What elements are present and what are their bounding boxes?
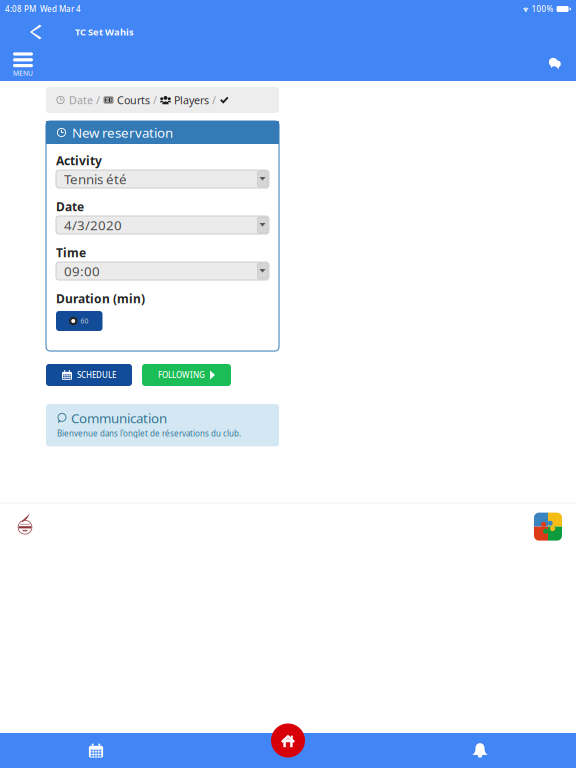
button[interactable]: Players bbox=[160, 91, 209, 109]
staticText: SCHEDULE bbox=[77, 370, 116, 380]
staticText: Time bbox=[56, 244, 86, 260]
staticText: TC Set Wahis bbox=[75, 26, 134, 38]
button[interactable]: Notifications bbox=[384, 733, 576, 768]
button[interactable]: 09:00 bbox=[56, 262, 269, 280]
staticText: FOLLOWING bbox=[158, 370, 205, 380]
staticText: / bbox=[150, 93, 160, 107]
staticText: / bbox=[93, 93, 103, 107]
staticText: Bienvenue dans l'onglet de réservations … bbox=[57, 428, 241, 439]
button[interactable]: SCHEDULE bbox=[46, 364, 132, 386]
button[interactable]: Menu bbox=[7, 44, 39, 82]
button[interactable]: Tennis été bbox=[56, 170, 269, 188]
staticText: 100% bbox=[530, 4, 554, 14]
button[interactable]: Home bbox=[192, 733, 384, 768]
staticText: Courts bbox=[117, 93, 150, 107]
button[interactable]: 60 bbox=[56, 311, 102, 331]
button[interactable]: FOLLOWING bbox=[142, 364, 231, 386]
staticText: Date bbox=[69, 93, 93, 107]
button[interactable]: Home bbox=[271, 723, 305, 757]
staticText: 09:00 bbox=[64, 262, 100, 280]
button[interactable]: Calendar bbox=[0, 733, 192, 768]
staticText: Tennis été bbox=[64, 170, 127, 188]
staticText: 60 bbox=[80, 317, 88, 325]
staticText: Wed Mar 4 bbox=[36, 4, 81, 14]
staticText: Duration (min) bbox=[56, 290, 145, 306]
staticText: Communication bbox=[71, 409, 167, 427]
staticText: Activity bbox=[56, 152, 102, 168]
staticText: New reservation bbox=[72, 124, 173, 141]
staticText: 4:08 PM bbox=[5, 4, 36, 14]
button[interactable]: 4/3/2020 bbox=[56, 216, 269, 234]
staticText: 4/3/2020 bbox=[64, 216, 122, 234]
staticText: MENU bbox=[13, 69, 33, 78]
button[interactable]: Back bbox=[23, 18, 47, 46]
staticText: Date bbox=[56, 198, 84, 214]
staticText: / bbox=[209, 93, 219, 107]
button[interactable]: Date bbox=[55, 91, 93, 109]
staticText: Players bbox=[174, 93, 209, 107]
button[interactable]: Messages bbox=[543, 46, 567, 81]
button[interactable]: Courts bbox=[103, 91, 150, 109]
